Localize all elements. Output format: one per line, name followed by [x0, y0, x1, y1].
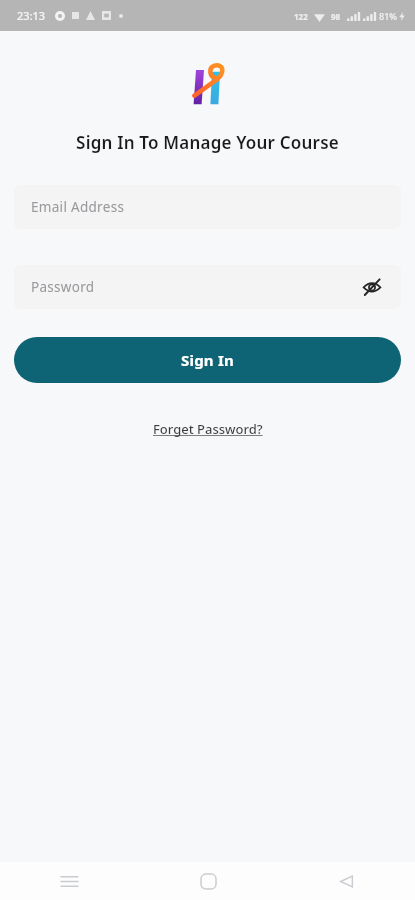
button[interactable]: Home: [139, 862, 277, 900]
button[interactable]: Sign In: [14, 337, 401, 383]
staticText: Sign In: [181, 350, 234, 370]
button[interactable]: Back: [277, 862, 415, 900]
button[interactable]: Recent apps: [0, 862, 139, 900]
staticText: Password: [31, 278, 360, 296]
button[interactable]: Show password: [360, 275, 384, 299]
staticText: Email Address: [31, 198, 384, 216]
staticText: Forget Password?: [153, 420, 263, 438]
button[interactable]: Forget Password?: [145, 416, 271, 442]
staticText: 122: [294, 11, 308, 22]
staticText: 98: [331, 11, 341, 22]
staticText: 81%: [379, 10, 397, 22]
staticText: 23:13: [17, 8, 46, 23]
button[interactable]: Email Address: [14, 185, 401, 229]
button[interactable]: Password: [14, 265, 401, 309]
staticText: Sign In To Manage Your Course: [76, 131, 339, 154]
